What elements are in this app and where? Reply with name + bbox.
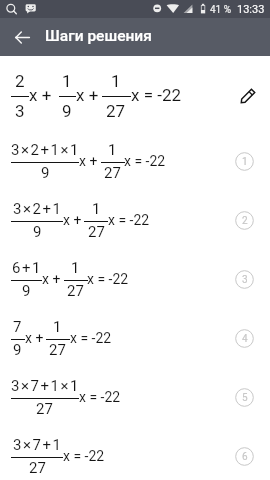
button[interactable]: Edit bbox=[232, 80, 263, 111]
staticText: x + bbox=[42, 271, 61, 287]
staticText: 7 bbox=[13, 318, 22, 336]
staticText: 3 × 7 + 1 bbox=[13, 436, 61, 454]
staticText: 41 % bbox=[210, 4, 232, 16]
button[interactable] bbox=[0, 309, 270, 368]
staticText: 1 bbox=[53, 318, 62, 336]
staticText: 9 bbox=[22, 282, 31, 300]
staticText: x = -22 bbox=[124, 153, 166, 169]
staticText: Шаги решения bbox=[45, 27, 152, 45]
button[interactable] bbox=[0, 250, 270, 309]
staticText: x + bbox=[29, 85, 56, 105]
staticText: 3 bbox=[242, 274, 248, 286]
staticText: 2 bbox=[242, 215, 248, 227]
staticText: 1 bbox=[242, 156, 248, 168]
staticText: 27 bbox=[49, 341, 66, 359]
staticText: 1 bbox=[92, 200, 101, 218]
staticText: 9 bbox=[41, 164, 50, 182]
staticText: 6 + 1 bbox=[12, 259, 41, 277]
staticText: x + bbox=[79, 153, 98, 169]
staticText: 4 bbox=[242, 333, 248, 345]
staticText: x + bbox=[25, 330, 44, 346]
staticText: x = -22 bbox=[63, 448, 105, 464]
staticText: 9 bbox=[33, 223, 42, 241]
staticText: 1 bbox=[111, 71, 121, 91]
staticText: 27 bbox=[67, 282, 84, 300]
staticText: 3 bbox=[15, 101, 25, 121]
button[interactable] bbox=[0, 132, 270, 191]
staticText: 27 bbox=[29, 459, 46, 477]
staticText: 2 bbox=[15, 71, 25, 91]
staticText: 9 bbox=[13, 341, 22, 359]
button[interactable] bbox=[0, 428, 270, 480]
staticText: x = -22 bbox=[108, 212, 150, 228]
staticText: 1 bbox=[71, 259, 80, 277]
staticText: 5 bbox=[242, 392, 248, 404]
staticText: 9 bbox=[62, 101, 72, 121]
staticText: x + bbox=[63, 212, 82, 228]
button[interactable]: Back bbox=[3, 18, 41, 56]
staticText: 6 bbox=[242, 451, 248, 463]
staticText: x = -22 bbox=[131, 85, 182, 105]
staticText: x = -22 bbox=[70, 330, 112, 346]
staticText: 27 bbox=[104, 164, 121, 182]
button[interactable] bbox=[0, 369, 270, 428]
staticText: 27 bbox=[36, 400, 53, 418]
staticText: 1 bbox=[108, 141, 117, 159]
staticText: x = -22 bbox=[87, 271, 129, 287]
staticText: 27 bbox=[106, 101, 126, 121]
staticText: 1 bbox=[62, 71, 72, 91]
staticText: x = -22 bbox=[79, 389, 121, 405]
staticText: 3 × 2 + 1 × 1 bbox=[11, 141, 79, 159]
button[interactable] bbox=[0, 191, 270, 250]
staticText: x + bbox=[76, 85, 103, 105]
staticText: 3 × 7 + 1 × 1 bbox=[11, 377, 79, 395]
staticText: 13:33 bbox=[237, 3, 265, 16]
staticText: 27 bbox=[88, 223, 105, 241]
staticText: 3 × 2 + 1 bbox=[13, 200, 61, 218]
